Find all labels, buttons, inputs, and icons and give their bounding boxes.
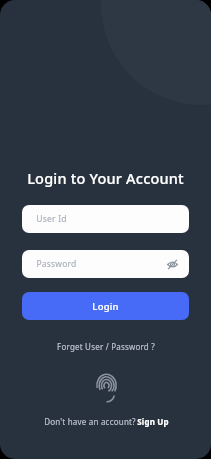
- staticText: Login to Your Account: [27, 168, 184, 188]
- staticText: Password: [36, 258, 77, 270]
- button[interactable]: Don't have an account?: [37, 413, 175, 430]
- staticText: Don't have an account?: [43, 416, 137, 427]
- button[interactable]: Show password: [164, 256, 180, 272]
- button[interactable]: Login with fingerprint: [93, 371, 119, 399]
- staticText: Forget User / Password ?: [57, 341, 155, 352]
- staticText: User Id: [36, 213, 67, 225]
- staticText: Login: [92, 300, 119, 313]
- button[interactable]: Password: [22, 250, 189, 278]
- staticText: Sign Up: [137, 416, 169, 427]
- button[interactable]: Forget User / Password ?: [51, 338, 161, 355]
- button[interactable]: Login: [22, 292, 189, 320]
- button[interactable]: User Id: [22, 205, 189, 233]
